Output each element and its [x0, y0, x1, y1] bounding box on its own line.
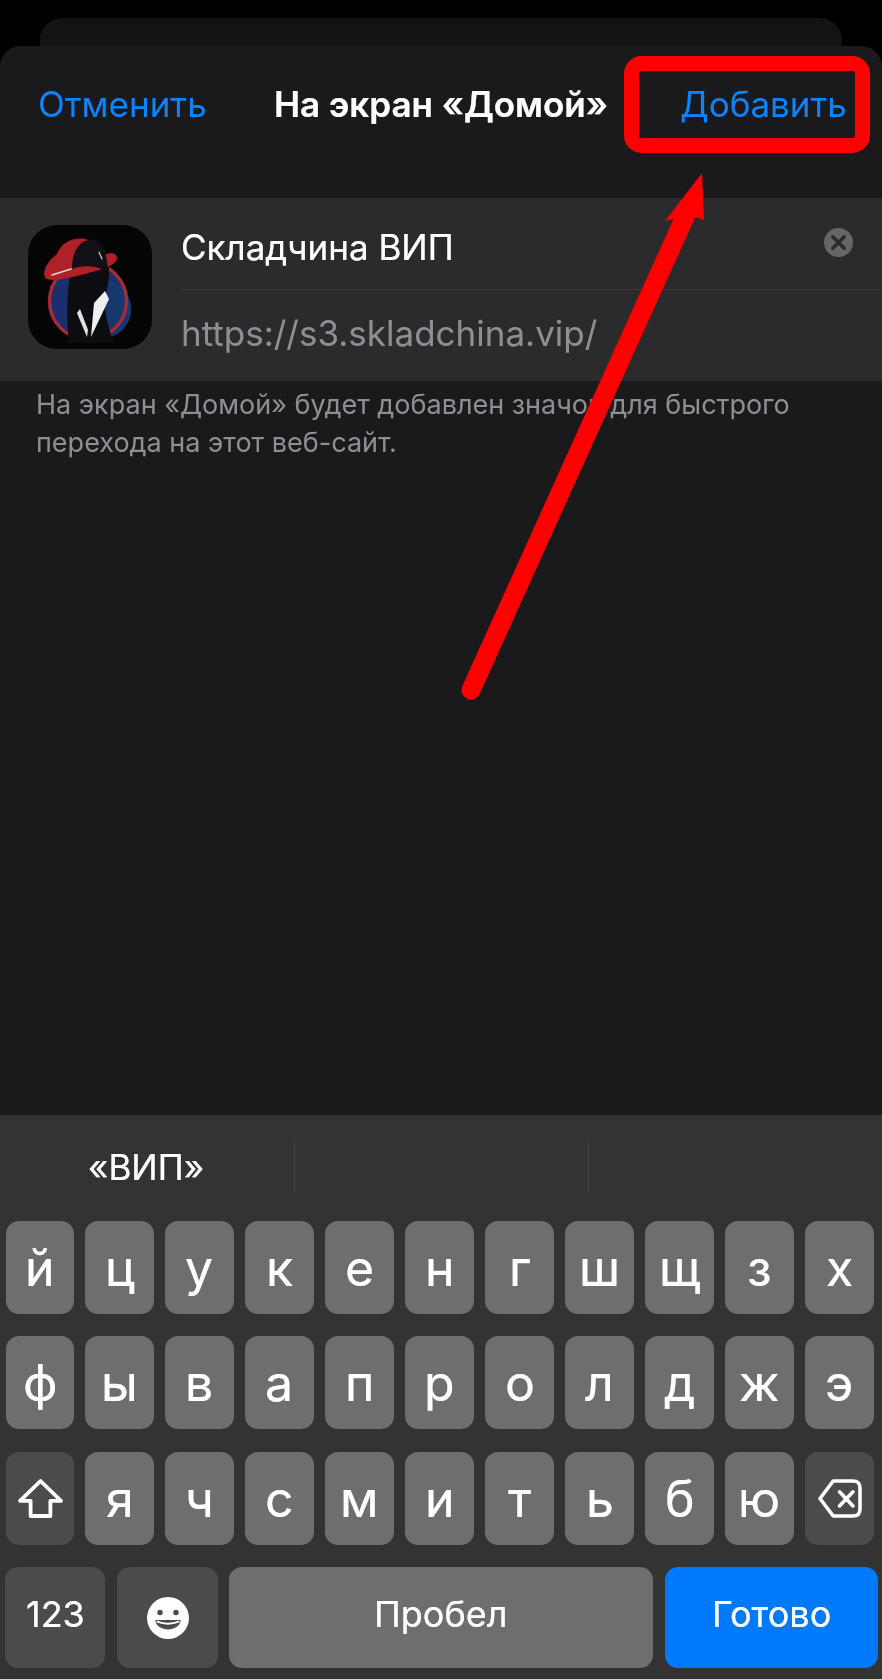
- staticText: э: [825, 1353, 854, 1413]
- button[interactable]: к: [245, 1221, 314, 1314]
- button[interactable]: н: [405, 1221, 474, 1314]
- staticText: ч: [185, 1469, 214, 1529]
- button[interactable]: 123: [5, 1567, 105, 1668]
- button[interactable]: ф: [6, 1336, 74, 1429]
- staticText: у: [185, 1238, 214, 1298]
- button[interactable]: ю: [725, 1452, 794, 1545]
- staticText: с: [265, 1469, 294, 1529]
- staticText: р: [424, 1353, 455, 1413]
- staticText: д: [664, 1353, 696, 1413]
- button[interactable]: й: [6, 1221, 74, 1314]
- staticText: е: [345, 1238, 375, 1298]
- staticText: з: [747, 1238, 772, 1298]
- staticText: ф: [23, 1353, 58, 1413]
- button[interactable]: е: [325, 1221, 394, 1314]
- button[interactable]: у: [165, 1221, 234, 1314]
- staticText: щ: [659, 1238, 701, 1298]
- staticText: м: [340, 1469, 379, 1529]
- staticText: ж: [739, 1353, 780, 1413]
- button[interactable]: м: [325, 1452, 394, 1545]
- staticText: г: [509, 1238, 531, 1298]
- staticText: ю: [738, 1469, 781, 1529]
- staticText: о: [505, 1353, 535, 1413]
- button[interactable]: р: [405, 1336, 474, 1429]
- button[interactable]: з: [725, 1221, 794, 1314]
- staticText: Складчина ВИП: [181, 226, 454, 268]
- staticText: Готово: [712, 1592, 832, 1636]
- staticText: На экран «Домой»: [274, 83, 608, 125]
- button[interactable]: х: [805, 1221, 874, 1314]
- staticText: 123: [26, 1592, 85, 1636]
- button[interactable]: Эмодзи: [117, 1567, 218, 1668]
- button[interactable]: э: [805, 1336, 874, 1429]
- staticText: ь: [586, 1469, 614, 1529]
- staticText: й: [25, 1238, 55, 1298]
- staticText: https://s3.skladchina.vip/: [181, 312, 598, 354]
- staticText: б: [665, 1469, 695, 1529]
- button[interactable]: б: [645, 1452, 714, 1545]
- staticText: в: [185, 1353, 214, 1413]
- button[interactable]: п: [325, 1336, 394, 1429]
- staticText: Добавить: [680, 83, 847, 125]
- button[interactable]: ч: [165, 1452, 234, 1545]
- staticText: х: [826, 1238, 854, 1298]
- button[interactable]: г: [485, 1221, 554, 1314]
- button[interactable]: т: [485, 1452, 554, 1545]
- button[interactable]: Готово: [665, 1567, 878, 1668]
- button[interactable]: Очистить: [808, 212, 868, 272]
- staticText: а: [265, 1353, 294, 1413]
- button[interactable]: ц: [85, 1221, 154, 1314]
- staticText: т: [508, 1469, 532, 1529]
- button[interactable]: Пробел: [229, 1567, 653, 1668]
- staticText: я: [106, 1469, 134, 1529]
- button[interactable]: д: [645, 1336, 714, 1429]
- staticText: н: [425, 1238, 455, 1298]
- button[interactable]: я: [85, 1452, 154, 1545]
- button[interactable]: в: [165, 1336, 234, 1429]
- staticText: ц: [105, 1238, 135, 1298]
- staticText: к: [266, 1238, 294, 1298]
- button[interactable]: ш: [565, 1221, 634, 1314]
- button[interactable]: Добавить: [650, 59, 877, 149]
- staticText: ы: [101, 1353, 138, 1413]
- button[interactable]: а: [245, 1336, 314, 1429]
- button[interactable]: Отменить: [8, 59, 237, 149]
- staticText: Пробел: [374, 1592, 508, 1636]
- staticText: и: [425, 1469, 455, 1529]
- button[interactable]: и: [405, 1452, 474, 1545]
- button[interactable]: ж: [725, 1336, 794, 1429]
- button[interactable]: ы: [85, 1336, 154, 1429]
- button[interactable]: о: [485, 1336, 554, 1429]
- button[interactable]: с: [245, 1452, 314, 1545]
- staticText: л: [585, 1353, 614, 1413]
- button[interactable]: ь: [565, 1452, 634, 1545]
- staticText: «ВИП»: [88, 1146, 205, 1188]
- button[interactable]: Стереть: [805, 1452, 874, 1545]
- button[interactable]: щ: [645, 1221, 714, 1314]
- button[interactable]: л: [565, 1336, 634, 1429]
- button[interactable]: Shift: [6, 1452, 74, 1545]
- staticText: п: [345, 1353, 375, 1413]
- staticText: На экран «Домой» будет добавлен значок д…: [36, 388, 836, 459]
- staticText: ш: [579, 1238, 621, 1298]
- staticText: Отменить: [38, 83, 207, 125]
